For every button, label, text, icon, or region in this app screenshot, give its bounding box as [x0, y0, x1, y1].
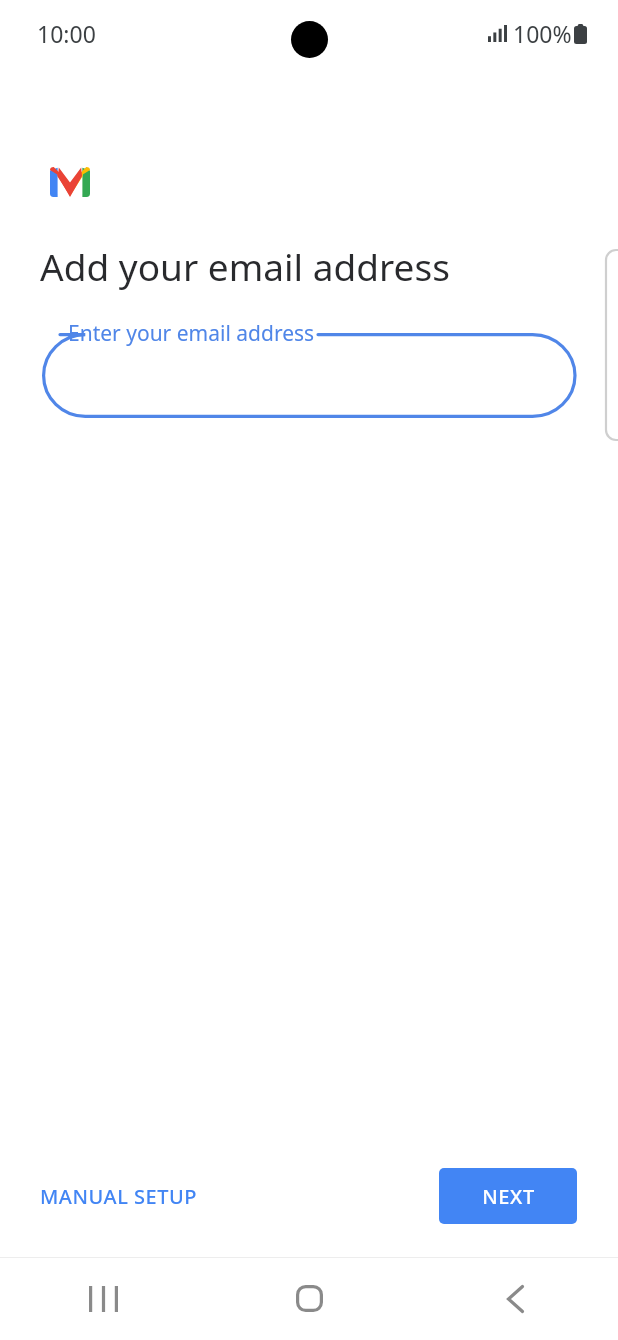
button[interactable]: NEXT: [439, 1168, 577, 1224]
staticText: Add your email address: [40, 241, 450, 291]
button[interactable]: Home: [206, 1257, 412, 1340]
staticText: Enter your email address: [68, 319, 315, 348]
staticText: 10:00: [37, 18, 96, 49]
staticText: 100%: [513, 18, 572, 49]
staticText: MANUAL SETUP: [40, 1183, 197, 1210]
button[interactable]: Recent apps: [0, 1257, 206, 1340]
button[interactable]: Enter your email address: [42, 333, 575, 418]
button[interactable]: Back: [412, 1257, 618, 1340]
staticText: NEXT: [482, 1183, 535, 1210]
button[interactable]: MANUAL SETUP: [24, 1173, 213, 1220]
